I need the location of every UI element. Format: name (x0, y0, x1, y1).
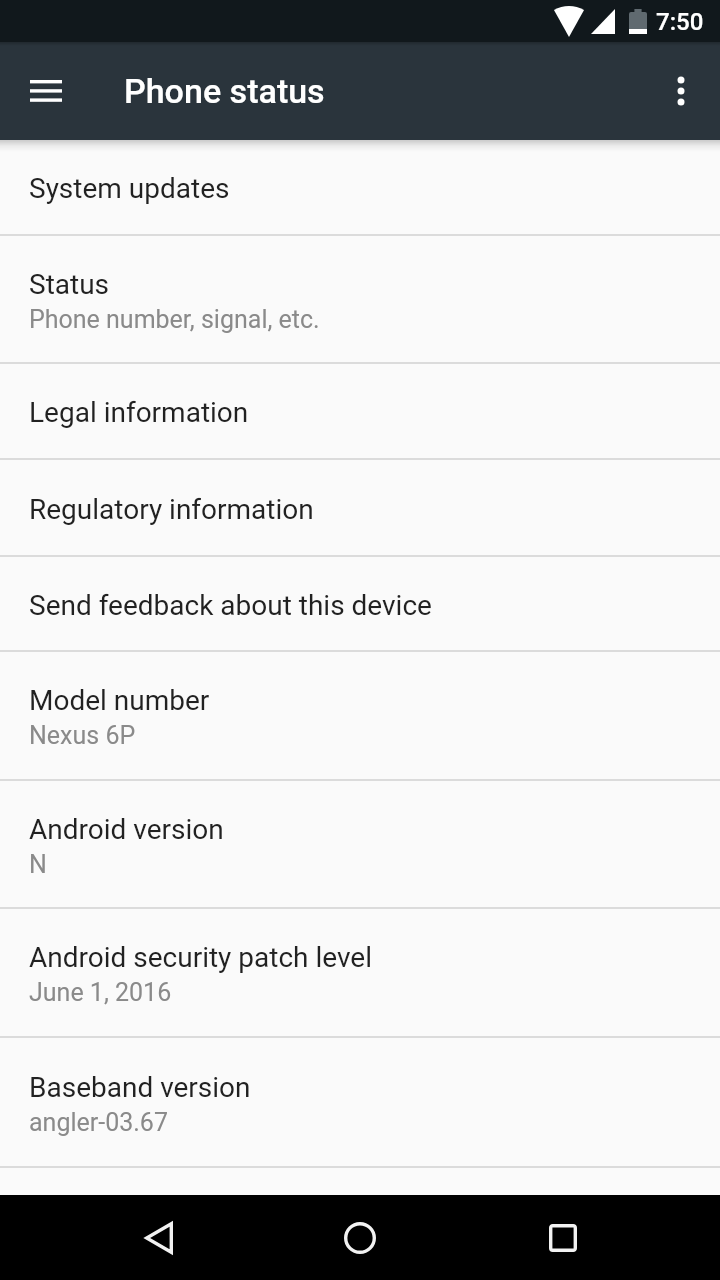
staticText: System updates (29, 172, 230, 205)
button[interactable] (22, 67, 70, 115)
button[interactable] (528, 1203, 598, 1273)
staticText: Regulatory information (29, 493, 314, 526)
staticText: Phone status (124, 71, 325, 111)
staticText: Baseband version (29, 1071, 251, 1104)
button[interactable]: Status (0, 236, 720, 362)
button[interactable]: Model number (0, 652, 720, 779)
button[interactable] (657, 67, 705, 115)
button[interactable]: System updates (0, 140, 720, 234)
button[interactable]: Baseband version (0, 1038, 720, 1166)
staticText: Status (29, 268, 110, 301)
staticText: June 1, 2016 (29, 978, 172, 1007)
staticText: N (29, 850, 47, 879)
staticText: Send feedback about this device (29, 589, 432, 622)
button[interactable]: Android security patch level (0, 909, 720, 1036)
button[interactable] (124, 1203, 194, 1273)
button[interactable]: Legal information (0, 364, 720, 458)
staticText: angler-03.67 (29, 1108, 168, 1137)
staticText: Legal information (29, 396, 249, 429)
staticText: Android security patch level (29, 941, 372, 974)
button[interactable]: Send feedback about this device (0, 557, 720, 650)
button[interactable] (325, 1203, 395, 1273)
staticText: Nexus 6P (29, 721, 136, 750)
staticText: Model number (29, 684, 210, 717)
button[interactable]: Regulatory information (0, 460, 720, 555)
staticText: Android version (29, 813, 224, 846)
button[interactable]: Android version (0, 781, 720, 907)
staticText: 7:50 (656, 8, 704, 36)
staticText: Phone number, signal, etc. (29, 305, 320, 334)
